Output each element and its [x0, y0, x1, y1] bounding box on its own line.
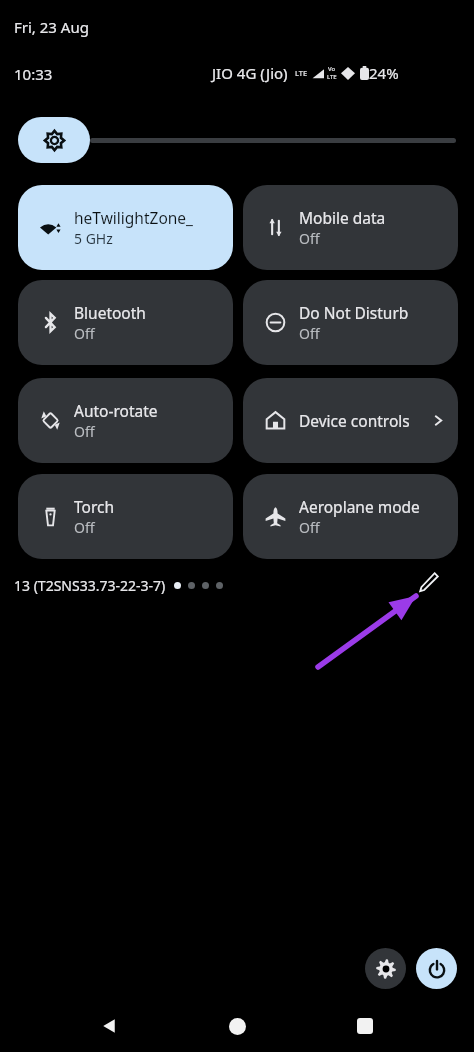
staticText: Off: [74, 422, 95, 441]
staticText: Off: [299, 324, 320, 343]
staticText: heTwilightZone_: [74, 207, 193, 228]
staticText: 10:33: [14, 64, 53, 84]
staticText: Vo: [328, 65, 336, 73]
button[interactable]: Do Not Disturb: [243, 280, 458, 365]
button[interactable]: Back: [85, 1002, 133, 1050]
staticText: Do Not Disturb: [299, 302, 409, 323]
button[interactable]: Home: [213, 1002, 261, 1050]
staticText: Mobile data: [299, 207, 386, 228]
button[interactable]: Device controls: [243, 378, 458, 463]
button[interactable]: Power: [416, 948, 457, 989]
staticText: Auto-rotate: [74, 400, 158, 421]
staticText: Off: [74, 518, 95, 537]
button[interactable]: Brightness: [18, 117, 456, 163]
staticText: Off: [299, 518, 320, 537]
staticText: JIO 4G (Jio): [212, 63, 288, 83]
button[interactable]: Torch: [18, 474, 233, 559]
staticText: Off: [299, 229, 320, 248]
staticText: 5 GHz: [74, 229, 113, 248]
button[interactable]: Mobile data: [243, 185, 458, 270]
staticText: Bluetooth: [74, 302, 146, 323]
staticText: Device controls: [299, 410, 431, 431]
staticText: LTE: [295, 68, 308, 78]
button[interactable]: Settings: [365, 948, 406, 989]
staticText: LTE: [327, 73, 337, 81]
button[interactable]: heTwilightZone_: [18, 185, 233, 270]
staticText: Off: [74, 324, 95, 343]
button[interactable]: Edit: [413, 566, 445, 598]
staticText: Fri, 23 Aug: [14, 17, 89, 37]
button[interactable]: Aeroplane mode: [243, 474, 458, 559]
staticText: 13 (T2SNS33.73-22-3-7): [14, 576, 166, 595]
button[interactable]: Auto-rotate: [18, 378, 233, 463]
button[interactable]: Bluetooth: [18, 280, 233, 365]
staticText: Torch: [74, 496, 115, 517]
button[interactable]: Recents: [341, 1002, 389, 1050]
staticText: Aeroplane mode: [299, 496, 420, 517]
staticText: 24%: [369, 63, 399, 83]
